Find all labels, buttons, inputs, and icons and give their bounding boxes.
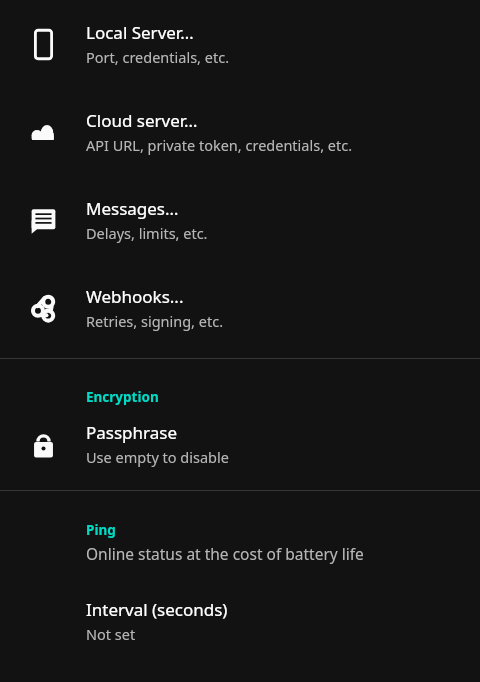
button[interactable]: Passphrase — [0, 406, 480, 482]
staticText: Retries, signing, etc. — [86, 311, 224, 331]
staticText: Delays, limits, etc. — [86, 223, 208, 243]
staticText: Webhooks... — [86, 285, 184, 308]
other: Webhooks — [30, 293, 57, 324]
staticText: Cloud server… — [86, 109, 198, 132]
staticText: Not set — [86, 624, 136, 644]
staticText: API URL, private token, credentials, etc… — [86, 135, 353, 155]
staticText: Passphrase — [86, 421, 178, 444]
button[interactable]: Interval (seconds) — [0, 598, 480, 644]
other: Local server — [30, 29, 57, 60]
button[interactable]: Messages — [0, 176, 480, 264]
button[interactable]: Local server — [0, 0, 480, 88]
staticText: Interval (seconds) — [86, 598, 228, 621]
other: Messages — [30, 205, 57, 236]
staticText: Encryption — [86, 388, 159, 406]
staticText: Local Server… — [86, 21, 194, 44]
staticText: Online status at the cost of battery lif… — [86, 543, 364, 564]
other: Passphrase — [30, 429, 57, 460]
staticText: Port, credentials, etc. — [86, 47, 230, 67]
other: Cloud server — [30, 117, 57, 148]
button[interactable]: Webhooks — [0, 264, 480, 352]
staticText: Use empty to disable — [86, 447, 229, 467]
staticText: Messages… — [86, 197, 179, 220]
button[interactable]: Ping — [0, 491, 480, 572]
staticText: Ping — [86, 521, 116, 539]
button[interactable]: Cloud server — [0, 88, 480, 176]
